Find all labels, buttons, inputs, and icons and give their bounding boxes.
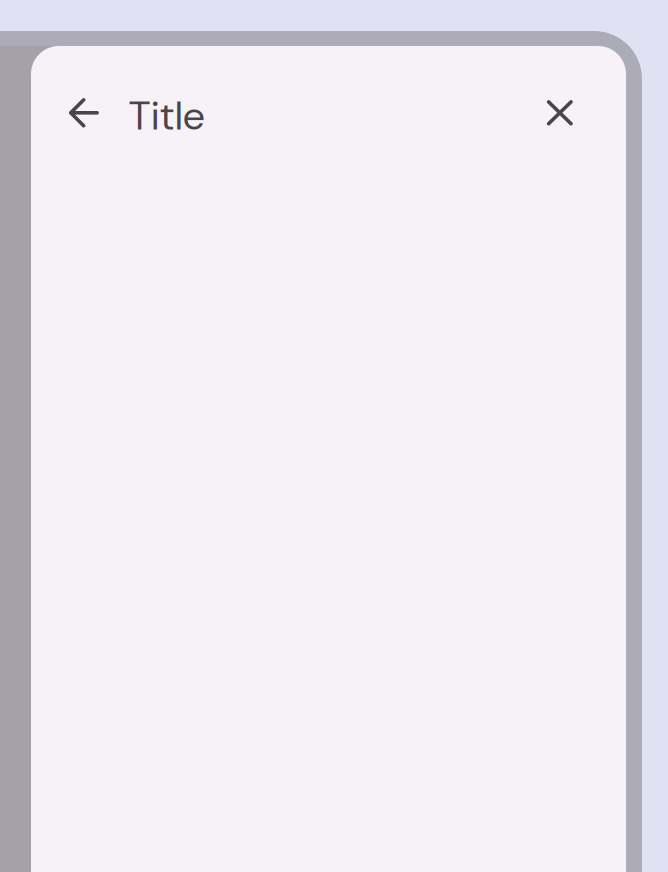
staticText: Title — [129, 90, 205, 142]
button[interactable]: Back — [56, 85, 112, 141]
button[interactable]: Close — [532, 85, 588, 141]
